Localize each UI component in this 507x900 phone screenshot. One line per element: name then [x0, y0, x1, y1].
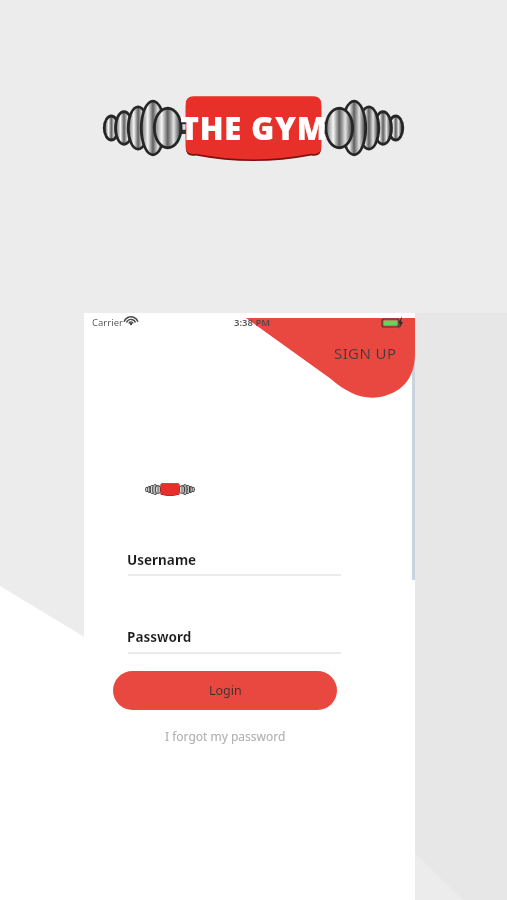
button[interactable]: Username: [127, 543, 341, 577]
staticText: 3:38 PM: [234, 316, 271, 329]
staticText: Username: [127, 551, 197, 569]
staticText: SIGN UP: [334, 343, 397, 363]
staticText: I forgot my password: [165, 728, 286, 744]
button[interactable]: I forgot my password: [140, 724, 310, 748]
button[interactable]: Password: [127, 620, 341, 654]
button[interactable]: SIGN UP: [322, 338, 408, 368]
button[interactable]: Login: [113, 671, 337, 710]
staticText: Carrier: [92, 316, 123, 329]
staticText: THE GYM: [180, 107, 328, 149]
staticText: Login: [209, 682, 242, 699]
staticText: Password: [127, 628, 192, 646]
